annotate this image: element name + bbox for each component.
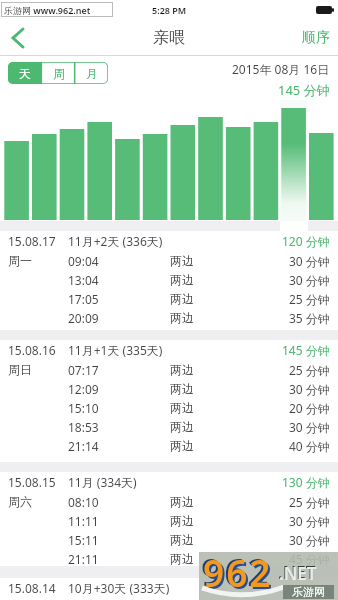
button[interactable]: 天 [8,62,42,84]
staticText: 25 分钟 [289,291,330,307]
staticText: 30 分钟 [289,381,330,397]
staticText: 乐游网 www.962.net [4,4,91,16]
button[interactable]: 13:04 [0,270,338,289]
staticText: 12:09 [68,381,99,397]
staticText: 两边 [170,532,194,547]
staticText: 11月 (334天) [68,474,137,490]
staticText: 15:11 [68,532,99,548]
staticText: 40 分钟 [289,438,330,454]
staticText: 25 分钟 [289,362,330,378]
staticText: 145 分钟 [282,342,330,358]
staticText: 30 分钟 [289,272,330,288]
staticText: 07:17 [68,362,99,378]
staticText: 08:10 [68,494,99,510]
staticText: 两边 [170,438,194,453]
button[interactable]: 15:10 [0,398,338,417]
staticText: 15:10 [68,400,99,416]
staticText: 两边 [170,291,194,306]
staticText: 两边 [170,551,194,566]
staticText: 两边 [170,381,194,396]
staticText: 11月+2天 (336天) [68,233,163,249]
button[interactable]: 15.08.15 [0,472,338,492]
staticText: 两边 [170,310,194,325]
staticText: 09:04 [68,253,99,269]
staticText: 30 分钟 [289,513,330,529]
staticText: 30 分钟 [289,253,330,269]
staticText: 15.08.16 [8,342,56,358]
button[interactable]: 15.08.17 [0,231,338,251]
staticText: 两边 [170,494,194,509]
staticText: 月 [86,66,98,81]
staticText: 周 [53,66,65,81]
button[interactable]: 18:53 [0,417,338,436]
staticText: 15.08.17 [8,233,56,249]
button[interactable]: 15.08.16 [0,340,338,360]
staticText: 18:53 [68,419,99,435]
button[interactable]: 20:09 [0,308,338,327]
staticText: 145 分钟 [278,81,330,99]
staticText: 天 [19,66,31,81]
button[interactable]: 周六 [0,492,338,511]
staticText: 962 [205,549,275,597]
staticText: 周一 [8,253,32,268]
staticText: .NET [279,562,317,585]
staticText: 25 分钟 [289,494,330,510]
button[interactable] [0,20,34,55]
staticText: 两边 [170,419,194,434]
staticText: 11:11 [68,513,99,529]
staticText: 17:05 [68,291,99,307]
staticText: 45 分钟 [289,551,330,567]
staticText: 5:28 PM [152,4,187,16]
button[interactable]: 17:05 [0,289,338,308]
button[interactable]: 11:11 [0,511,338,530]
staticText: 21:14 [68,438,99,454]
staticText: 两边 [170,362,194,377]
button[interactable]: 顺序 [302,29,330,47]
staticText: 亲喂 [153,28,185,48]
staticText: 两边 [170,253,194,268]
staticText: 21:11 [68,551,99,567]
staticText: 11月+1天 (335天) [68,342,163,358]
button[interactable]: 周 [42,62,75,84]
staticText: 30 分钟 [289,419,330,435]
staticText: 30 分钟 [289,532,330,548]
button[interactable]: 月 [75,62,108,84]
button[interactable]: 周一 [0,251,338,270]
staticText: 962 [203,547,273,595]
staticText: 962 [201,546,271,594]
staticText: 周六 [8,494,32,509]
staticText: .NET [278,561,316,584]
button[interactable]: 周日 [0,360,338,379]
button[interactable]: 12:09 [0,379,338,398]
staticText: 20 分钟 [289,400,330,416]
staticText: 顺序 [302,29,330,47]
button[interactable]: 21:14 [0,436,338,455]
button[interactable]: 15:11 [0,530,338,549]
button[interactable]: 21:11 [0,549,338,568]
staticText: 130 分钟 [282,474,330,490]
staticText: 10月+30天 (333天) [68,580,170,596]
staticText: 两边 [170,272,194,287]
staticText: 35 分钟 [289,310,330,326]
staticText: 20:09 [68,310,99,326]
staticText: 周日 [8,362,32,377]
staticText: 两边 [170,400,194,415]
staticText: 15.08.15 [8,474,56,490]
button[interactable]: 15.08.14 [0,578,338,598]
staticText: 15.08.14 [8,580,56,596]
staticText: 13:04 [68,272,99,288]
staticText: 乐游网 [292,585,325,599]
staticText: 2015年 08月 16日 [232,61,330,77]
staticText: 120 分钟 [282,233,330,249]
staticText: 两边 [170,513,194,528]
